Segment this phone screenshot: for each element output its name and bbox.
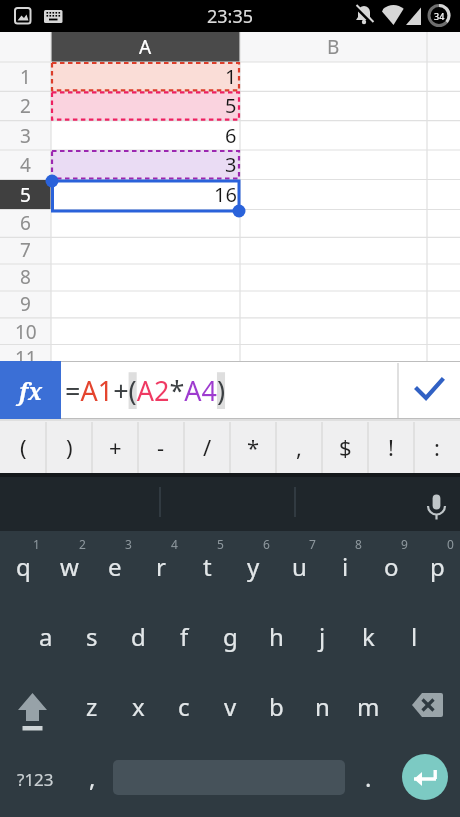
button[interactable]: A: [0, 32, 460, 361]
button[interactable]: z: [69, 678, 115, 734]
staticText: ?123: [17, 768, 54, 791]
staticText: $: [339, 432, 352, 462]
button[interactable]: [396, 678, 460, 734]
button[interactable]: :: [414, 421, 460, 473]
staticText: 8: [20, 264, 31, 290]
button[interactable]: w: [46, 538, 92, 594]
staticText: 34: [434, 10, 445, 22]
staticText: =A1+(A2*A4): [65, 372, 226, 409]
button[interactable]: !: [368, 421, 414, 473]
staticText: x: [132, 690, 145, 723]
staticText: A: [139, 34, 152, 60]
button[interactable]: u: [276, 538, 322, 594]
button[interactable]: h: [253, 608, 299, 664]
button[interactable]: *: [230, 421, 276, 473]
staticText: (: [20, 432, 27, 462]
button[interactable]: p: [414, 538, 460, 594]
staticText: 6: [225, 122, 237, 149]
staticText: b: [269, 690, 284, 723]
staticText: a: [39, 620, 53, 653]
staticText: k: [362, 620, 375, 653]
staticText: ): [66, 432, 73, 462]
button[interactable]: q: [0, 538, 46, 594]
staticText: 3: [125, 536, 132, 552]
button[interactable]: y: [230, 538, 276, 594]
button[interactable]: s: [69, 608, 115, 664]
staticText: !: [388, 432, 394, 462]
button[interactable]: d: [115, 608, 161, 664]
button[interactable]: c: [161, 678, 207, 734]
button[interactable]: [420, 481, 454, 523]
button[interactable]: l: [391, 608, 437, 664]
button[interactable]: .: [345, 746, 391, 808]
staticText: 6: [20, 210, 31, 236]
button[interactable]: x: [115, 678, 161, 734]
button[interactable]: i: [322, 538, 368, 594]
staticText: e: [108, 550, 122, 583]
staticText: 0: [447, 536, 454, 552]
button[interactable]: r: [138, 538, 184, 594]
staticText: c: [178, 690, 190, 723]
button[interactable]: -: [138, 421, 184, 473]
staticText: 8: [355, 536, 362, 552]
button[interactable]: $: [322, 421, 368, 473]
button[interactable]: [0, 678, 64, 734]
staticText: 9: [401, 536, 408, 552]
staticText: 3: [20, 123, 31, 149]
staticText: 9: [20, 291, 31, 317]
staticText: 1: [33, 536, 40, 552]
button[interactable]: v: [207, 678, 253, 734]
button[interactable]: n: [299, 678, 345, 734]
button[interactable]: b: [253, 678, 299, 734]
button[interactable]: ,: [69, 746, 115, 808]
staticText: 11: [15, 345, 37, 371]
button[interactable]: j: [299, 608, 345, 664]
staticText: ,: [296, 432, 302, 462]
button[interactable]: k: [345, 608, 391, 664]
staticText: 5: [20, 182, 31, 208]
button[interactable]: a: [23, 608, 69, 664]
staticText: 1: [20, 64, 31, 90]
staticText: p: [430, 550, 445, 583]
staticText: B: [327, 34, 340, 60]
staticText: i: [342, 550, 349, 583]
button[interactable]: o: [368, 538, 414, 594]
staticText: w: [60, 550, 79, 583]
staticText: u: [292, 550, 307, 583]
staticText: d: [131, 620, 146, 653]
button[interactable]: /: [184, 421, 230, 473]
staticText: 5: [225, 92, 237, 119]
staticText: 7: [309, 536, 316, 552]
staticText: 2: [79, 536, 86, 552]
button[interactable]: ): [46, 421, 92, 473]
button[interactable]: fx: [0, 361, 61, 419]
staticText: 1: [225, 63, 237, 90]
staticText: v: [224, 690, 237, 723]
button[interactable]: (: [0, 421, 46, 473]
button[interactable]: [398, 361, 460, 419]
staticText: t: [203, 550, 212, 583]
staticText: 4: [171, 536, 178, 552]
staticText: n: [315, 690, 330, 723]
staticText: z: [86, 690, 98, 723]
staticText: s: [86, 620, 98, 653]
staticText: 16: [214, 181, 237, 208]
button[interactable]: ?123: [0, 748, 70, 810]
button[interactable]: m: [345, 678, 391, 734]
staticText: h: [269, 620, 284, 653]
button[interactable]: e: [92, 538, 138, 594]
button[interactable]: +: [92, 421, 138, 473]
staticText: 23:35: [207, 4, 254, 28]
staticText: j: [319, 620, 326, 653]
staticText: q: [16, 550, 31, 583]
staticText: .: [365, 761, 372, 794]
button[interactable]: ,: [276, 421, 322, 473]
button[interactable]: g: [207, 608, 253, 664]
button[interactable]: t: [184, 538, 230, 594]
button[interactable]: [402, 754, 448, 800]
button[interactable]: =A1+(A2*A4): [61, 361, 398, 419]
button[interactable]: f: [161, 608, 207, 664]
